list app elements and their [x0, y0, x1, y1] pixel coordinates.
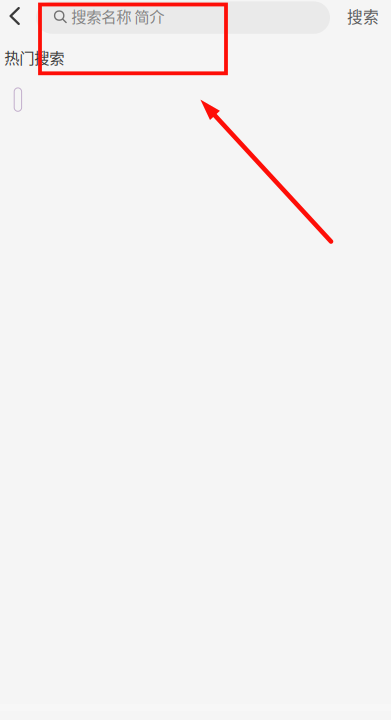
button[interactable]: Hot search tag [14, 88, 22, 111]
staticText: 搜索名称 简介 [71, 5, 164, 27]
staticText: 搜索 [347, 4, 379, 27]
button[interactable]: 搜索 [338, 0, 387, 30]
staticText: 热门搜索 [4, 46, 64, 68]
button[interactable]: Back [0, 0, 36, 34]
button[interactable]: 搜索名称 简介 [36, 1, 330, 34]
